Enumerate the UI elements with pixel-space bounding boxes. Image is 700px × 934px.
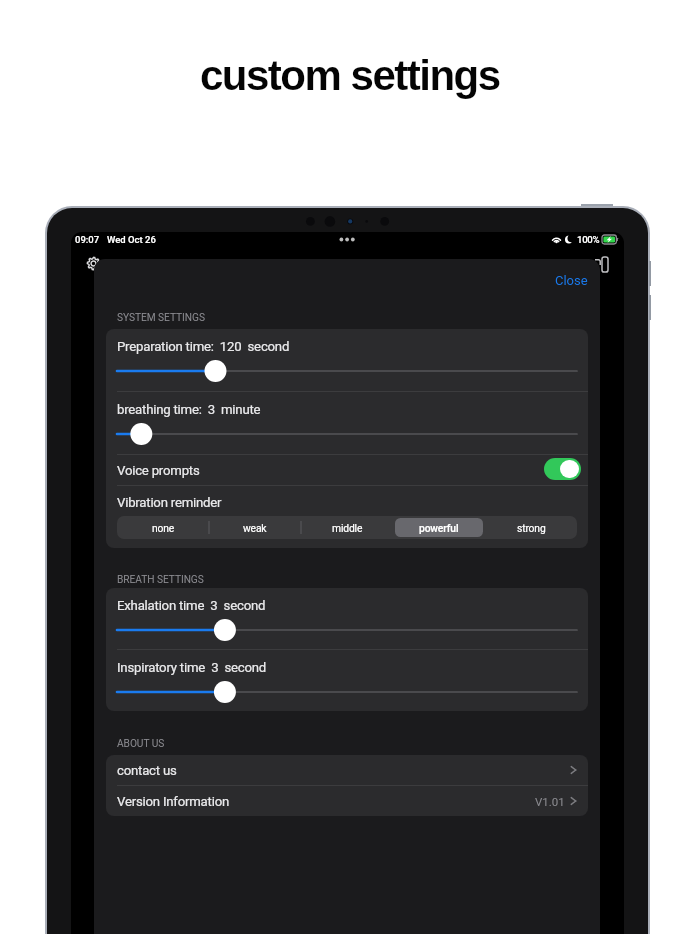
staticText: 09:07 <box>75 234 100 245</box>
staticText: Exhalation time 3 second <box>117 598 266 613</box>
button[interactable]: Preparation time: 120 second <box>106 329 588 391</box>
button[interactable]: Version Information <box>106 786 588 816</box>
button[interactable]: Inspiratory time 3 second <box>106 650 588 711</box>
button[interactable]: Exhalation time 3 second <box>106 588 588 649</box>
staticText: weak <box>243 522 267 534</box>
staticText: powerful <box>419 522 459 534</box>
staticText: ABOUT US <box>117 738 165 750</box>
staticText: V1.01 <box>535 795 565 808</box>
staticText: middle <box>332 522 363 534</box>
staticText: custom settings <box>200 52 500 99</box>
staticText: breathing time: 3 minute <box>117 402 261 417</box>
staticText: SYSTEM SETTINGS <box>117 312 205 324</box>
staticText: 100% <box>577 234 600 245</box>
staticText: Vibration reminder <box>117 495 222 510</box>
button[interactable]: none <box>119 518 207 537</box>
staticText: Close <box>555 273 588 288</box>
button[interactable]: Settings <box>85 255 102 272</box>
staticText: none <box>152 522 175 534</box>
button[interactable]: strong <box>487 518 575 537</box>
button[interactable]: middle <box>303 518 391 537</box>
button[interactable]: contact us <box>106 755 588 785</box>
button[interactable]: Close <box>542 266 600 295</box>
other: breathing time: 3 minute <box>117 423 577 445</box>
button[interactable]: breathing time: 3 minute <box>106 392 588 454</box>
staticText: BREATH SETTINGS <box>117 574 204 586</box>
other: Preparation time: 120 second <box>117 360 577 382</box>
staticText: Inspiratory time 3 second <box>117 660 267 675</box>
button[interactable]: Voice prompts <box>106 455 588 485</box>
staticText: Voice prompts <box>117 463 200 478</box>
staticText: contact us <box>117 763 177 778</box>
button[interactable]: weak <box>211 518 299 537</box>
staticText: Preparation time: 120 second <box>117 339 290 354</box>
button[interactable]: powerful <box>395 518 483 537</box>
staticText: strong <box>517 522 546 534</box>
staticText: Wed Oct 26 <box>107 234 156 245</box>
other: Exhalation time 3 second <box>117 619 577 641</box>
staticText: Version Information <box>117 794 229 809</box>
other: Inspiratory time 3 second <box>117 681 577 703</box>
